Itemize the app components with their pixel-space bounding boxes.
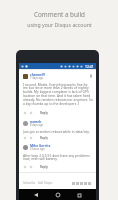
staticText: Comment a build [34, 10, 85, 19]
staticText: Mike Gerrits [30, 143, 51, 147]
staticText: using your Disqus account [27, 21, 92, 28]
staticText: Just got a random reboot while in data/c… [23, 129, 90, 133]
staticText: channel9 [30, 72, 45, 76]
staticText: Add Disqus [38, 181, 53, 185]
button[interactable]: Upvote [23, 136, 27, 140]
button[interactable]: Share [72, 182, 75, 185]
button[interactable]: Share [80, 182, 83, 185]
staticText: After loop 2.0.0.9 I dont have any probl… [23, 153, 93, 161]
button[interactable]: Share [84, 182, 87, 185]
button[interactable]: Downvote [29, 111, 33, 115]
staticText: I second, Mattis. Everything works fine … [23, 82, 93, 106]
staticText: Reply [40, 111, 48, 115]
staticText: 12:41 [85, 64, 94, 69]
staticText: 7 days ago [30, 76, 44, 80]
button[interactable]: Reply [40, 111, 48, 115]
staticText: 2 hours ago [30, 147, 45, 151]
staticText: Subscribe [23, 181, 36, 185]
button[interactable]: More options [89, 74, 93, 78]
button[interactable]: Back [31, 190, 41, 200]
button[interactable]: Share [88, 182, 91, 185]
button[interactable]: Upvote [23, 165, 27, 169]
button[interactable]: Upvote [23, 111, 27, 115]
staticText: nemek [30, 119, 42, 123]
button[interactable]: Downvote [29, 136, 33, 140]
button[interactable]: Home [53, 190, 63, 200]
button[interactable]: Downvote [29, 165, 33, 169]
staticText: 8 days ago [30, 123, 44, 127]
staticText: Reply [40, 165, 48, 169]
staticText: Reply [40, 136, 48, 140]
button[interactable]: Reply [40, 165, 48, 169]
button[interactable]: Share [76, 182, 79, 185]
button[interactable]: Subscribe [23, 181, 36, 185]
button[interactable]: Recents [74, 190, 84, 200]
button[interactable]: Reply [40, 136, 48, 140]
button[interactable]: Add Disqus [38, 181, 53, 185]
